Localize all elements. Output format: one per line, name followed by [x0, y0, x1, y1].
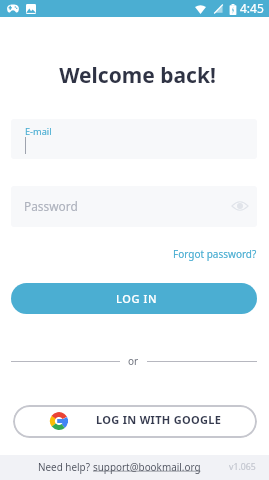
button[interactable]: support@bookmail.org — [93, 460, 201, 473]
button[interactable]: Forgot password? — [160, 246, 257, 262]
staticText: Welcome back! — [3, 61, 269, 90]
button[interactable]: LOG IN WITH GOOGLE — [13, 405, 257, 438]
staticText: Forgot password? — [173, 247, 257, 261]
staticText: Need help? — [38, 460, 93, 473]
button[interactable]: E-mail — [11, 119, 257, 159]
staticText: 4:45 — [240, 0, 264, 16]
button[interactable]: Password — [11, 186, 257, 227]
button[interactable]: LOG IN — [11, 283, 257, 314]
staticText: LOG IN WITH GOOGLE — [96, 412, 222, 427]
staticText: E-mail — [25, 125, 52, 138]
staticText: Password — [24, 198, 78, 214]
staticText: v1.065 — [229, 461, 256, 473]
staticText: LOG IN — [116, 291, 158, 306]
button[interactable]: Show password — [229, 195, 251, 217]
staticText: or — [128, 354, 139, 368]
